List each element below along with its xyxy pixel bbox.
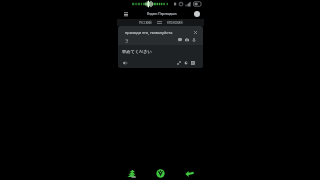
staticText: Э (125, 37, 129, 44)
staticText: РУССКИЙ (139, 21, 152, 25)
staticText: 早めてください (122, 49, 152, 54)
staticText: ЯПОНСКИЙ (167, 21, 183, 25)
button[interactable]: Voice input (191, 37, 197, 43)
staticText: приходи это, пожалуйста (125, 30, 173, 35)
button[interactable]: Recent apps (117, 167, 146, 180)
button[interactable]: Home (146, 167, 175, 180)
button[interactable]: Clear (193, 30, 198, 35)
button[interactable]: Listen (122, 60, 128, 66)
staticText: Яндекс Переводчик (147, 12, 177, 16)
button[interactable]: Menu (121, 9, 130, 18)
button[interactable]: Account (194, 11, 200, 17)
button[interactable]: ЯПОНСКИЙ (165, 21, 185, 25)
button[interactable]: Conversation (177, 37, 183, 43)
button[interactable]: Fullscreen (176, 60, 182, 66)
button[interactable]: РУССКИЙ (137, 21, 154, 25)
button[interactable]: Copy (190, 60, 196, 66)
button[interactable]: Share (183, 60, 189, 66)
button[interactable]: Camera (184, 37, 190, 43)
button[interactable]: Swap languages (157, 20, 162, 25)
button[interactable]: Back (175, 167, 204, 180)
